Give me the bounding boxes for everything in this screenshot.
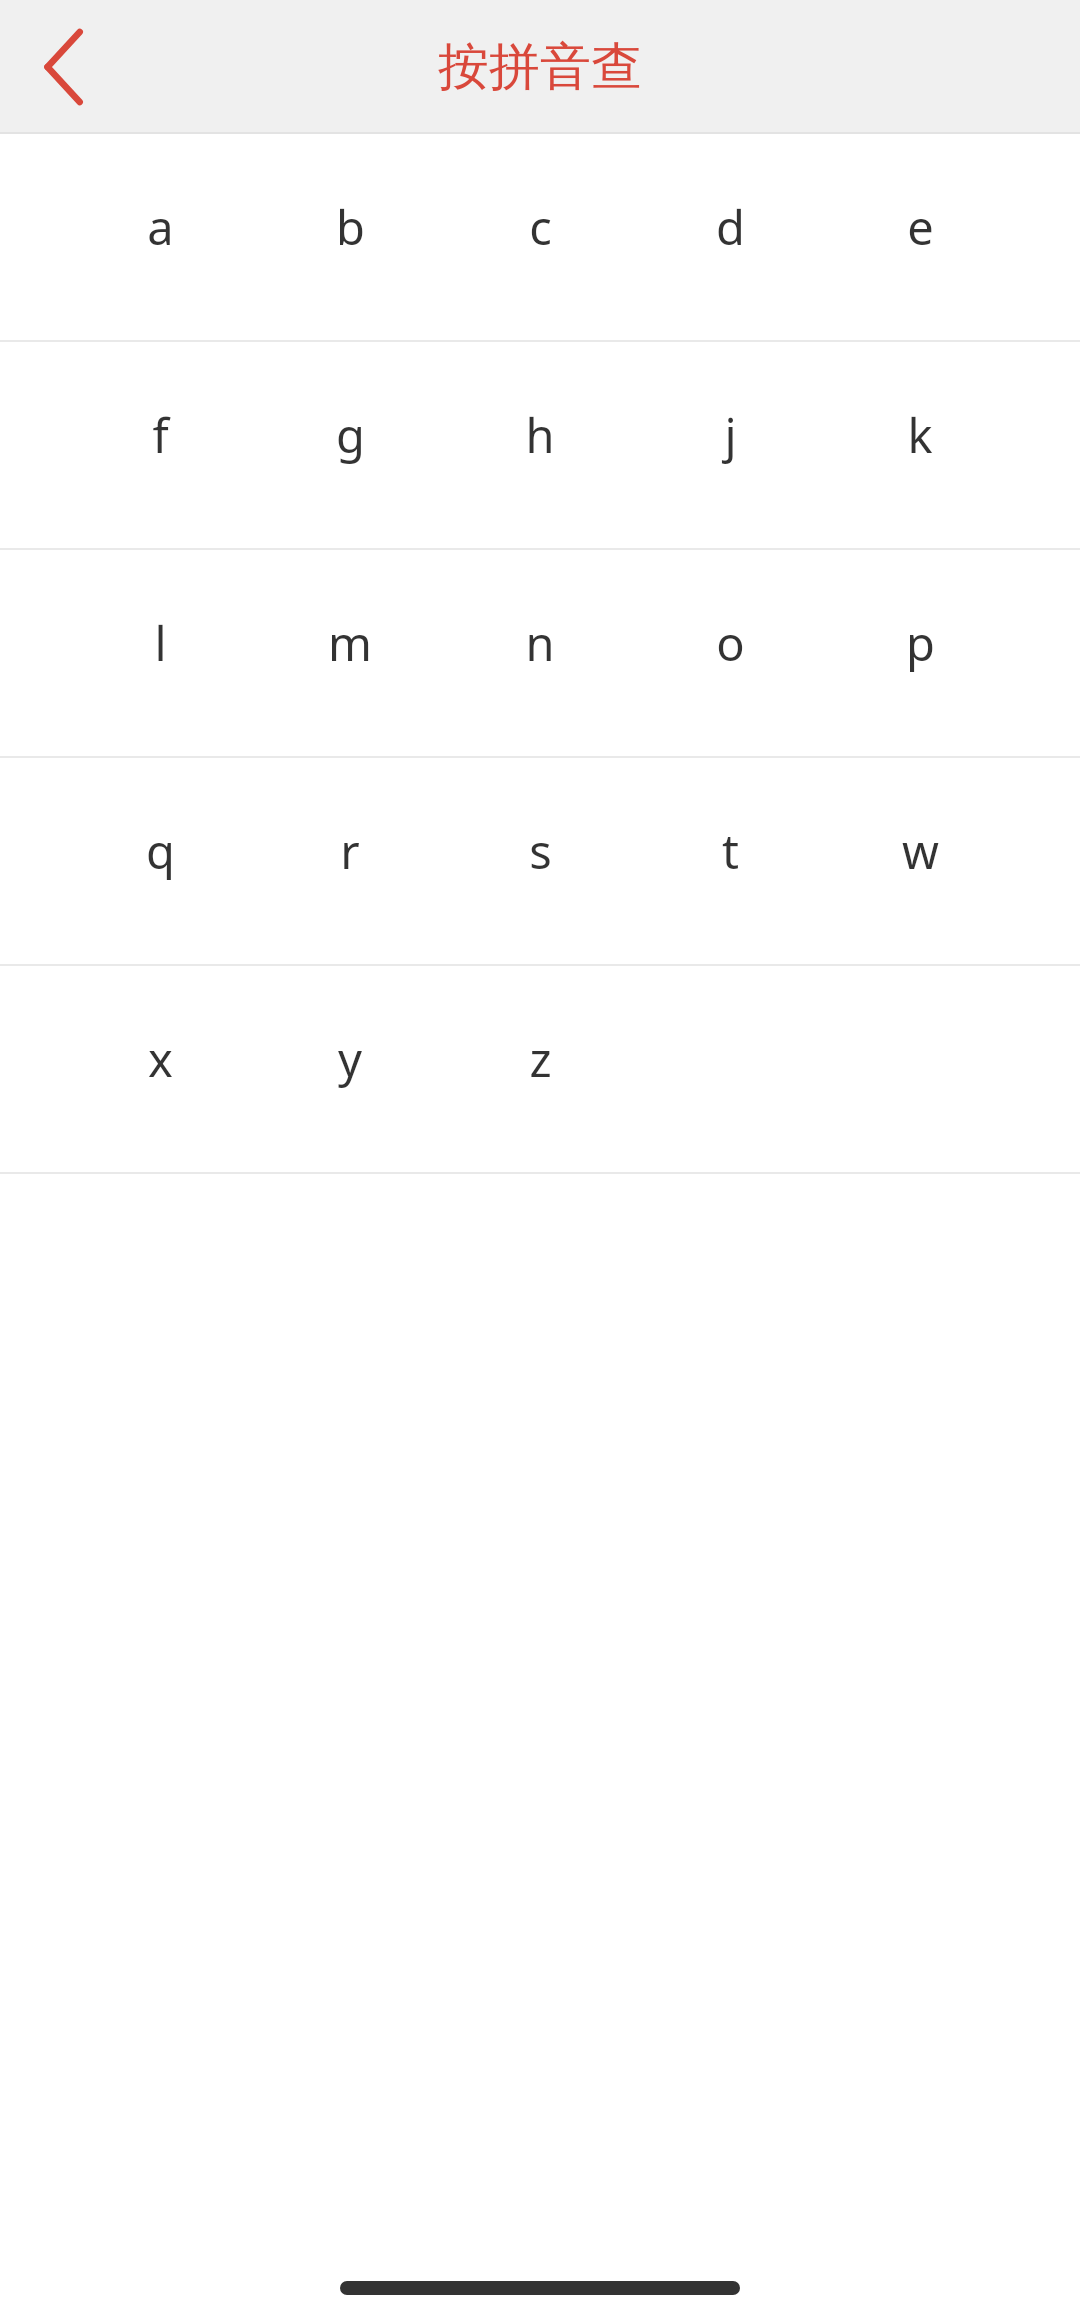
button[interactable]: g bbox=[255, 342, 445, 548]
staticText: c bbox=[529, 195, 552, 259]
button[interactable]: n bbox=[445, 550, 635, 756]
staticText: s bbox=[529, 819, 552, 883]
button[interactable]: h bbox=[445, 342, 635, 548]
button[interactable]: e bbox=[825, 134, 1015, 340]
staticText: h bbox=[525, 403, 555, 467]
button[interactable]: z bbox=[445, 966, 635, 1172]
staticText: q bbox=[146, 819, 175, 883]
button[interactable]: f bbox=[65, 342, 255, 548]
staticText: n bbox=[525, 611, 555, 675]
staticText: b bbox=[336, 195, 365, 259]
button[interactable]: t bbox=[635, 758, 825, 964]
staticText: t bbox=[722, 819, 739, 883]
button[interactable]: m bbox=[255, 550, 445, 756]
button[interactable]: k bbox=[825, 342, 1015, 548]
button[interactable]: d bbox=[635, 134, 825, 340]
button[interactable]: j bbox=[635, 342, 825, 548]
button[interactable]: b bbox=[255, 134, 445, 340]
button[interactable]: l bbox=[65, 550, 255, 756]
button[interactable]: o bbox=[635, 550, 825, 756]
staticText: m bbox=[328, 611, 372, 675]
button[interactable]: p bbox=[825, 550, 1015, 756]
staticText: g bbox=[336, 403, 365, 467]
button[interactable]: r bbox=[255, 758, 445, 964]
button[interactable]: w bbox=[825, 758, 1015, 964]
staticText: p bbox=[906, 611, 935, 675]
staticText: x bbox=[148, 1027, 173, 1091]
staticText: y bbox=[338, 1027, 362, 1091]
staticText: w bbox=[902, 819, 939, 883]
staticText: r bbox=[340, 819, 360, 883]
staticText: j bbox=[724, 403, 737, 467]
button[interactable]: c bbox=[445, 134, 635, 340]
staticText: e bbox=[907, 195, 934, 259]
button[interactable]: s bbox=[445, 758, 635, 964]
button[interactable]: y bbox=[255, 966, 445, 1172]
button[interactable]: x bbox=[65, 966, 255, 1172]
staticText: k bbox=[907, 403, 933, 467]
staticText: f bbox=[152, 403, 169, 467]
staticText: d bbox=[716, 195, 745, 259]
staticText: z bbox=[529, 1027, 552, 1091]
button[interactable]: q bbox=[65, 758, 255, 964]
button[interactable]: Back bbox=[0, 0, 130, 134]
button[interactable]: a bbox=[65, 134, 255, 340]
staticText: 按拼音查 bbox=[0, 35, 1080, 99]
staticText: l bbox=[154, 611, 167, 675]
staticText: o bbox=[716, 611, 745, 675]
staticText: a bbox=[147, 195, 174, 259]
